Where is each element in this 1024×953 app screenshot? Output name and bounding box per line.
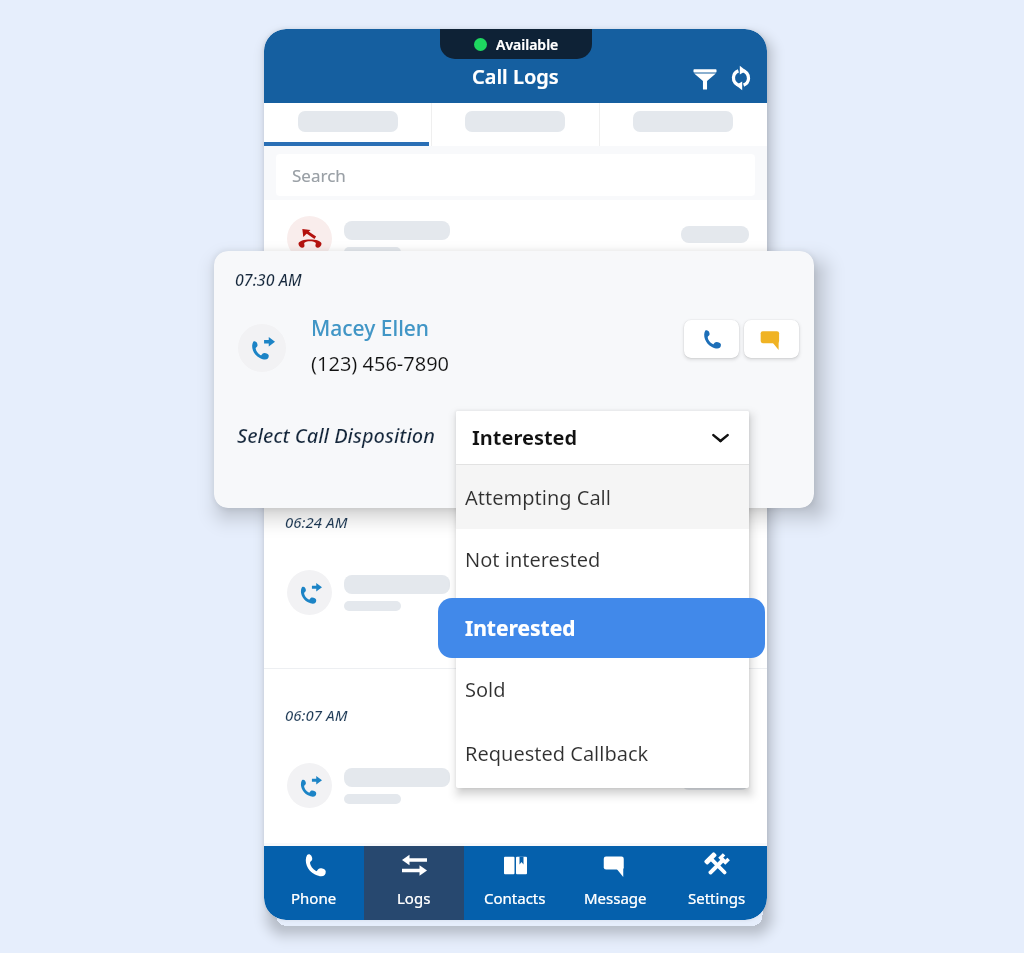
staticText: Contacts	[484, 888, 546, 908]
staticText: Available	[496, 35, 559, 54]
button[interactable]: Sold	[456, 657, 749, 721]
staticText: Attempting Call	[465, 484, 611, 511]
button[interactable]: Interested	[456, 411, 749, 464]
button[interactable]: Requested Callback	[456, 721, 749, 785]
button[interactable]: Available	[440, 29, 592, 59]
button[interactable]: Message	[565, 846, 666, 920]
staticText: Settings	[688, 888, 746, 908]
button[interactable]: Attempting Call	[456, 465, 749, 529]
button[interactable]: Macey Ellen	[311, 314, 430, 343]
button[interactable]: Call	[684, 320, 739, 358]
staticText: Logs	[397, 888, 431, 908]
staticText: 07:30 AM	[235, 269, 302, 291]
staticText: Not interested	[465, 546, 601, 573]
button[interactable]: Not interested	[456, 527, 749, 591]
button[interactable]: Filter	[687, 60, 723, 96]
staticText: Phone	[291, 888, 337, 908]
staticText: Select Call Disposition	[237, 422, 435, 449]
button[interactable]	[431, 103, 599, 146]
button[interactable]: Refresh	[723, 60, 759, 96]
staticText: Call Logs	[472, 63, 559, 90]
button[interactable]: Phone	[264, 846, 364, 920]
button[interactable]: Message	[744, 320, 799, 358]
staticText: 06:07 AM	[285, 705, 348, 725]
button[interactable]: Search	[276, 154, 755, 196]
button[interactable]: Logs	[364, 846, 464, 920]
button[interactable]: Settings	[666, 846, 767, 920]
button[interactable]: Interested	[438, 598, 765, 658]
staticText: 06:24 AM	[285, 512, 348, 532]
button[interactable]	[599, 103, 767, 146]
staticText: Requested Callback	[465, 740, 649, 767]
button[interactable]: Contacts	[464, 846, 565, 920]
staticText: Interested	[472, 424, 578, 451]
staticText: Message	[584, 888, 647, 908]
staticText: (123) 456-7890	[311, 350, 450, 377]
button[interactable]	[264, 103, 431, 146]
staticText: Interested	[465, 614, 576, 643]
staticText: Search	[292, 164, 346, 187]
staticText: Sold	[465, 676, 506, 703]
